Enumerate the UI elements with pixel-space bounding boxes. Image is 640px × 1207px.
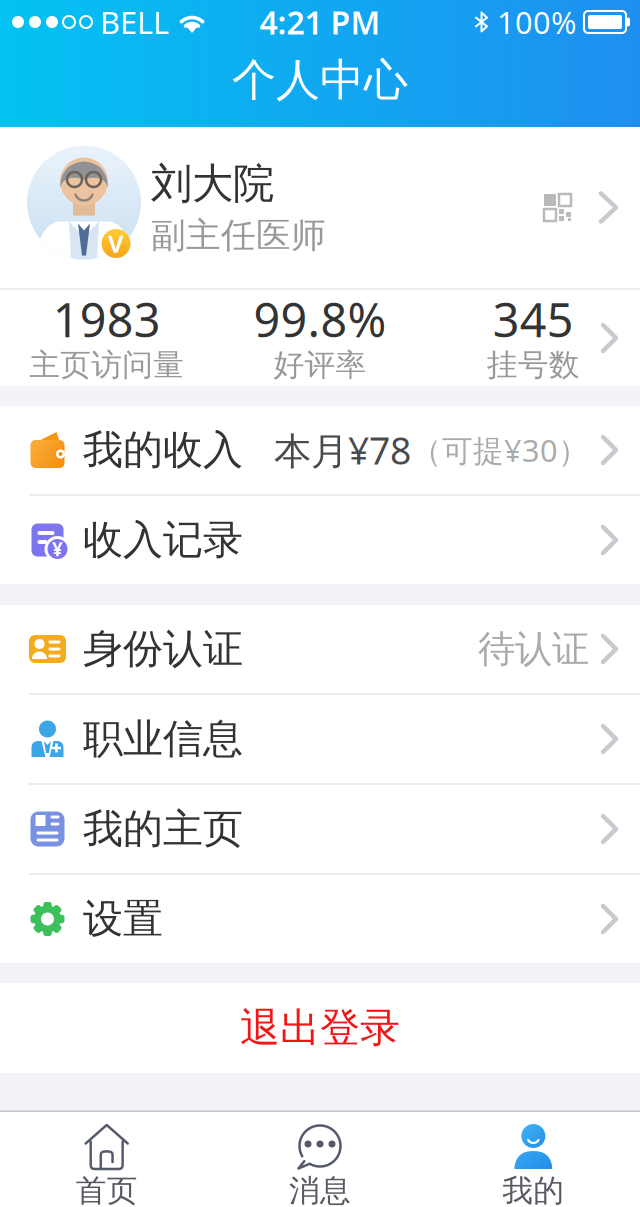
staticText: 消息 xyxy=(289,1172,351,1207)
button[interactable]: ¥ xyxy=(0,496,640,584)
button[interactable]: 设置 xyxy=(0,875,640,963)
staticText: 挂号数 xyxy=(487,346,580,384)
staticText: 主页访问量 xyxy=(29,346,184,384)
staticText: 我的 xyxy=(502,1172,564,1207)
staticText: 好评率 xyxy=(273,346,366,384)
button[interactable]: 消息 xyxy=(213,1125,427,1207)
staticText: V xyxy=(108,228,124,259)
staticText: 个人中心 xyxy=(232,53,408,107)
button[interactable]: 身份认证 xyxy=(0,605,640,693)
staticText: 我的收入 xyxy=(83,425,243,474)
button[interactable]: 我的收入 xyxy=(0,406,640,494)
staticText: 本月¥78 xyxy=(274,425,411,475)
staticText: 345 xyxy=(493,288,574,350)
staticText: 收入记录 xyxy=(83,515,243,564)
staticText: 职业信息 xyxy=(83,714,243,763)
staticText: 100% xyxy=(497,2,576,42)
staticText: 刘大院 xyxy=(151,158,274,209)
button[interactable]: 我的主页 xyxy=(0,785,640,873)
button[interactable]: 首页 xyxy=(0,1125,213,1207)
button[interactable]: 1983 xyxy=(0,290,640,386)
staticText: 99.8% xyxy=(253,288,386,350)
staticText: 退出登录 xyxy=(240,1003,400,1052)
staticText: 设置 xyxy=(83,894,163,943)
staticText: 4:21 PM xyxy=(259,1,380,43)
staticText: 副主任医师 xyxy=(151,214,326,257)
staticText: ¥ xyxy=(52,537,63,561)
staticText: 身份认证 xyxy=(83,624,243,673)
button[interactable]: V xyxy=(0,127,640,288)
staticText: 我的主页 xyxy=(83,804,243,853)
button[interactable]: 我的 xyxy=(427,1125,640,1207)
staticText: 1983 xyxy=(53,288,161,350)
button[interactable]: 退出登录 xyxy=(0,983,640,1073)
staticText: 首页 xyxy=(76,1172,138,1207)
staticText: BELL xyxy=(100,2,169,42)
staticText: （可提¥30） xyxy=(411,430,589,470)
button[interactable]: 职业信息 xyxy=(0,695,640,783)
staticText: 待认证 xyxy=(478,626,589,672)
